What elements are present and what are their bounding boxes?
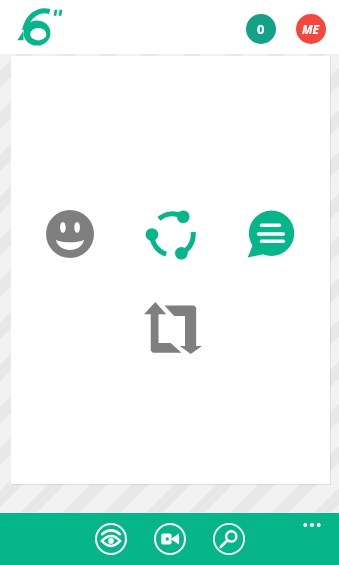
button[interactable]: More options [296, 513, 328, 537]
button[interactable]: Revine [144, 302, 202, 354]
staticText: 0 [257, 20, 265, 38]
staticText: ME [302, 21, 320, 37]
button[interactable]: Record [150, 519, 190, 559]
button[interactable]: ME [296, 14, 326, 44]
button[interactable]: 0 [246, 14, 276, 44]
button[interactable]: Share [146, 209, 196, 258]
button[interactable]: Vine [12, 7, 68, 47]
button[interactable]: Comment [247, 210, 294, 258]
button[interactable]: Like [46, 210, 94, 258]
button[interactable]: Home [91, 519, 131, 559]
button[interactable]: Search [209, 519, 249, 559]
